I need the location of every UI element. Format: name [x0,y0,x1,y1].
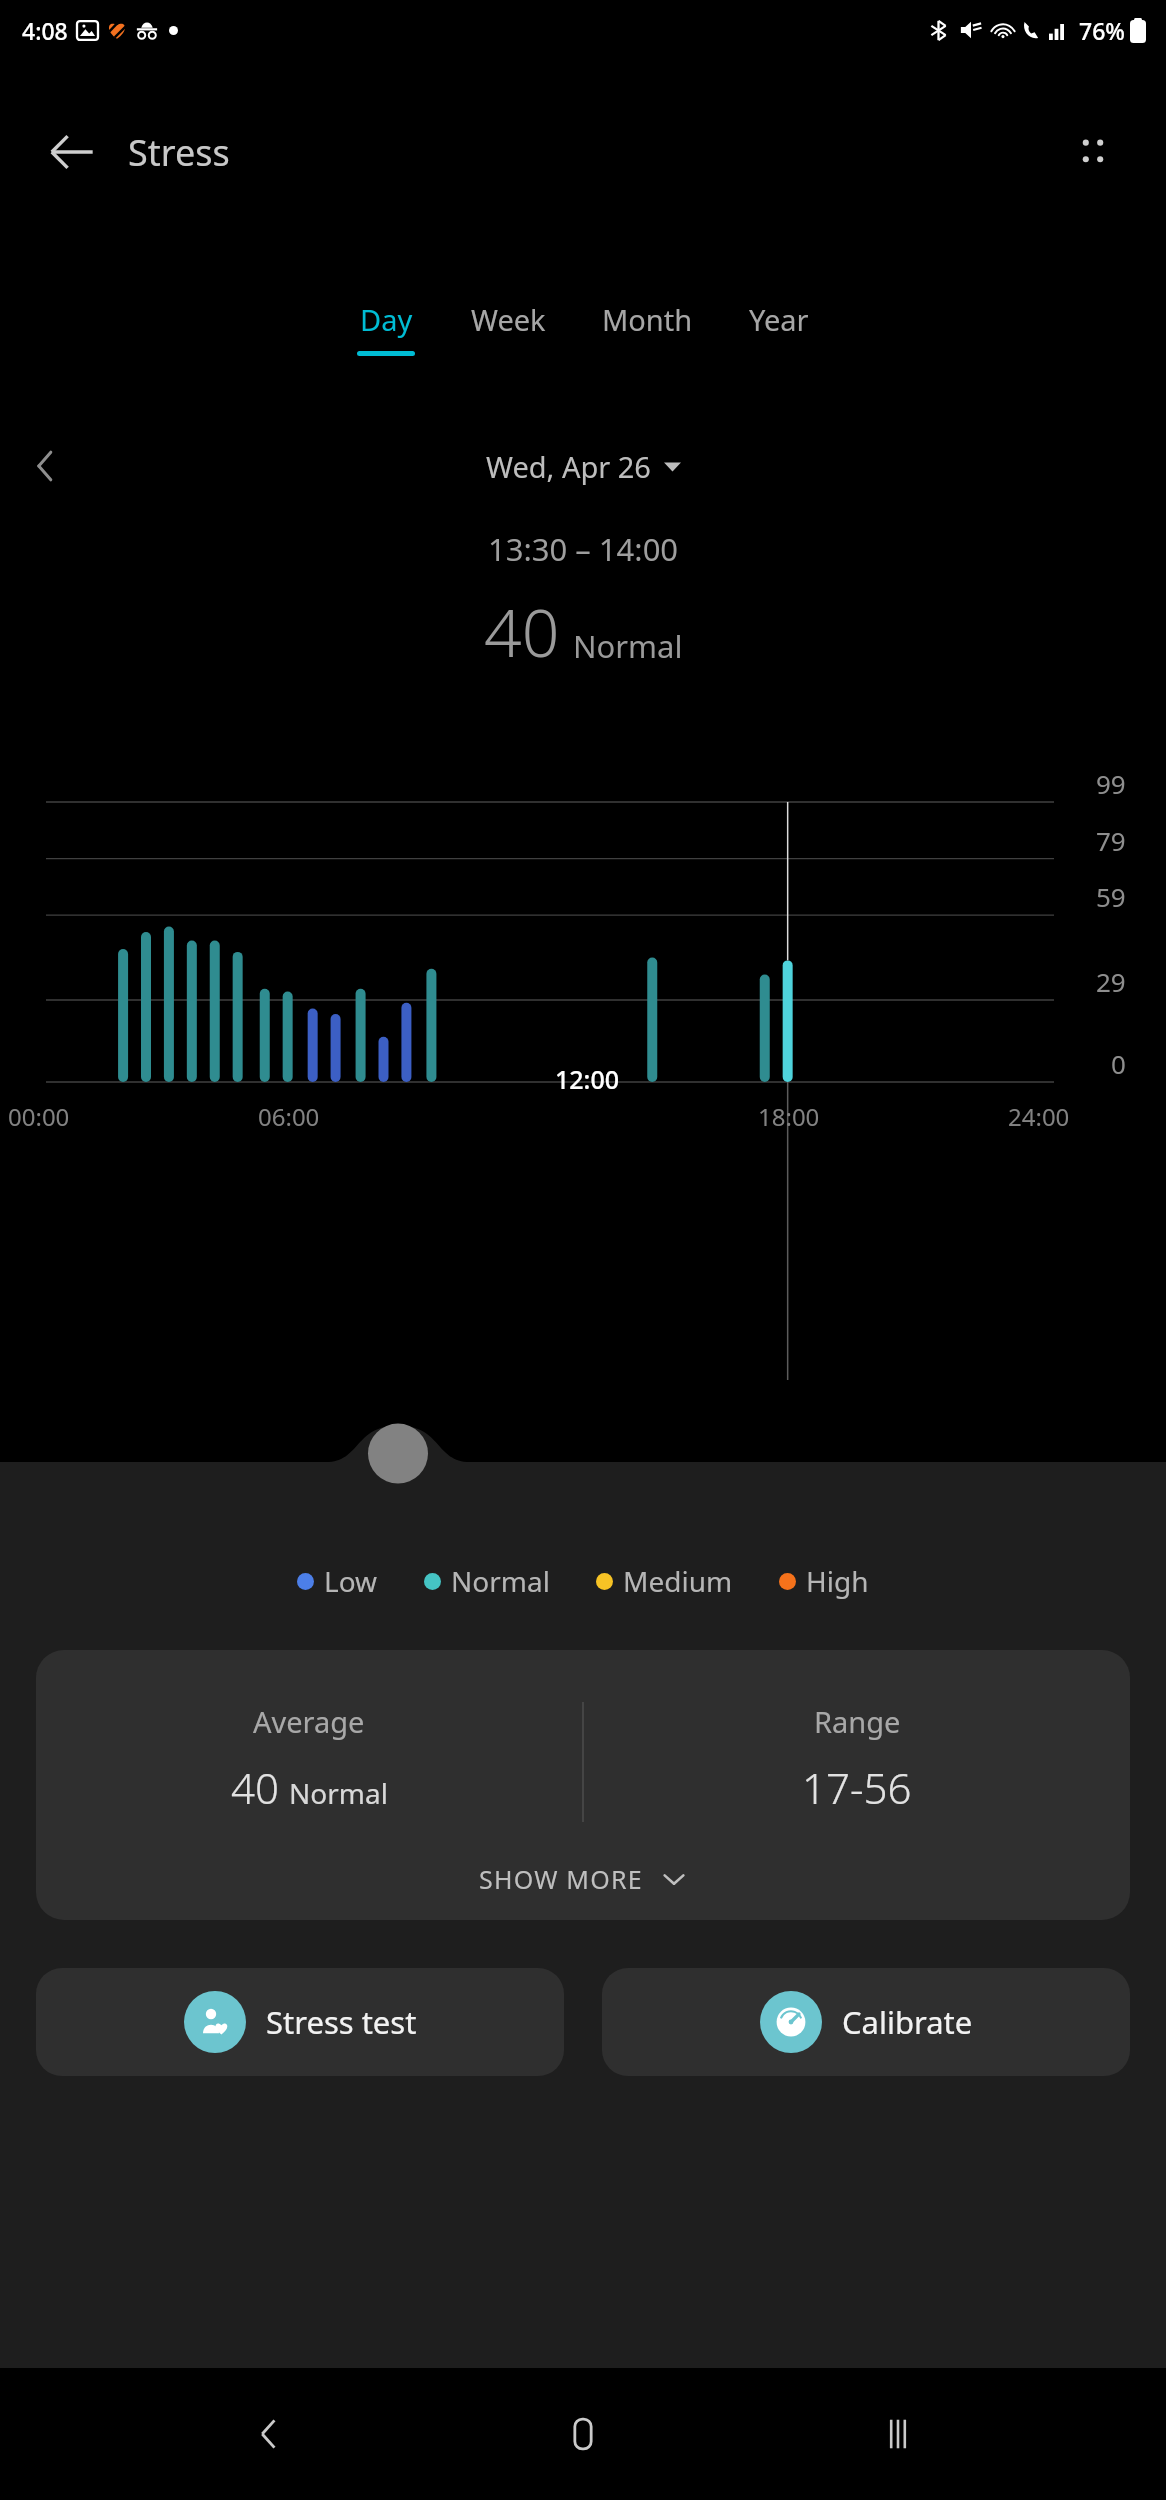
staticText: Medium [623,1562,733,1600]
staticText: 24:00 [1008,1100,1070,1133]
staticText: 29 [1096,964,1126,999]
staticText: Stress [128,128,230,177]
staticText: High [806,1562,869,1600]
staticText: Normal [289,1774,388,1812]
staticText: 12:00 [555,1062,620,1096]
button[interactable]: Wed, Apr 26 [478,439,689,494]
button[interactable]: Day [329,300,443,356]
staticText: Month [602,300,693,339]
staticText: Wed, Apr 26 [486,447,651,486]
staticText: 00:00 [8,1100,70,1133]
button[interactable]: Previous day [16,436,76,496]
button[interactable]: Recents [852,2388,944,2480]
staticText: 4:08 [22,15,68,46]
staticText: 59 [1096,879,1126,914]
staticText: Range [814,1702,901,1741]
staticText: 13:30 – 14:00 [488,528,679,570]
staticText: Low [324,1562,378,1600]
staticText: 40 [231,1759,279,1816]
button[interactable]: Average [36,1650,1130,1920]
staticText: Year [749,300,809,339]
button[interactable]: SHOW MORE [479,1862,687,1896]
staticText: Stress test [266,2001,417,2043]
staticText: 99 [1096,766,1126,801]
button[interactable]: Year [721,300,837,351]
staticText: Calibrate [842,2001,973,2043]
staticText: 17-56 [802,1759,912,1816]
button[interactable]: Month [574,300,721,351]
button[interactable]: Week [443,300,574,351]
button[interactable]: More options [1060,119,1126,185]
button[interactable]: Back [42,122,102,182]
staticText: 40 [484,586,560,676]
staticText: 76% [1079,15,1125,46]
staticText: Day [360,300,413,339]
staticText: 79 [1096,823,1126,858]
staticText: SHOW MORE [479,1862,643,1896]
button[interactable]: Stress test [36,1968,564,2076]
button[interactable]: Back [223,2388,315,2480]
staticText: Normal [573,625,683,667]
staticText: Week [471,300,546,339]
staticText: 06:00 [258,1100,320,1133]
button[interactable]: Home [537,2388,629,2480]
staticText: Normal [451,1562,550,1600]
staticText: Average [253,1702,365,1741]
staticText: 0 [1111,1046,1126,1081]
button[interactable]: Calibrate [602,1968,1130,2076]
staticText: 18:00 [758,1100,820,1133]
